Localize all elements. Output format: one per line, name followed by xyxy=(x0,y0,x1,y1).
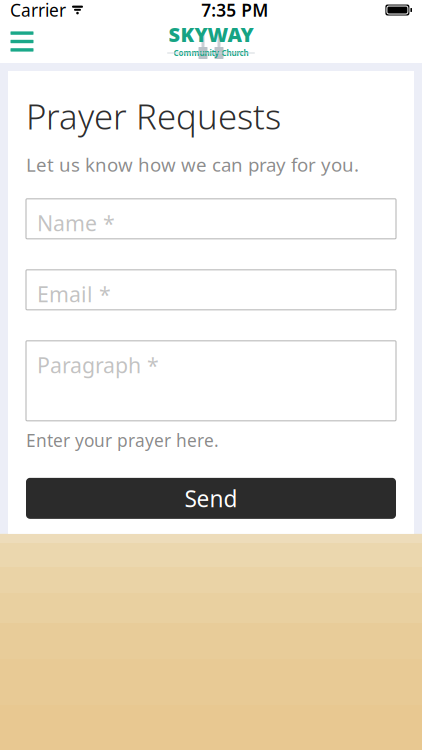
staticText: Community Church xyxy=(173,47,248,58)
staticText: Email * xyxy=(37,280,111,308)
staticText: Carrier xyxy=(10,0,66,21)
staticText: Prayer Requests xyxy=(26,93,281,139)
staticText: Name * xyxy=(37,209,115,237)
staticText: Paragraph * xyxy=(37,351,159,379)
button[interactable]: Menu xyxy=(0,20,422,63)
staticText: 7:35 PM xyxy=(201,0,268,21)
button[interactable]: Send xyxy=(26,478,396,519)
staticText: Let us know how we can pray for you. xyxy=(26,152,359,177)
staticText: Send xyxy=(184,483,237,513)
staticText: Enter your prayer here. xyxy=(26,429,219,452)
staticText: SKYWAY xyxy=(168,21,253,47)
